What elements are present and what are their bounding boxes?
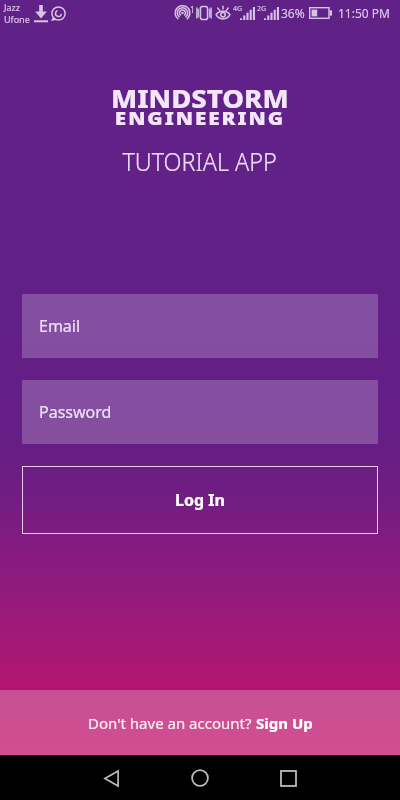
staticText: MINDSTORM xyxy=(111,81,289,115)
button[interactable]: Email xyxy=(22,294,378,358)
staticText: 4G xyxy=(233,4,243,14)
staticText: 36% xyxy=(281,5,305,21)
staticText: ENGINEERING xyxy=(115,106,286,131)
button[interactable]: Don't have an account? xyxy=(88,713,313,733)
button[interactable]: Password xyxy=(22,380,378,444)
staticText: Don't have an account? xyxy=(88,713,256,733)
button[interactable]: Back xyxy=(93,760,129,796)
staticText: 11:50 PM xyxy=(338,5,390,21)
staticText: Jazz xyxy=(4,1,20,13)
button[interactable]: Log In xyxy=(22,466,378,534)
staticText: Password xyxy=(39,401,112,423)
staticText: Email xyxy=(39,315,81,337)
staticText: Ufone xyxy=(4,13,30,25)
staticText: 1 xyxy=(190,4,195,15)
staticText: 2G xyxy=(257,4,267,14)
staticText: Sign Up xyxy=(256,713,313,733)
staticText: Log In xyxy=(175,489,225,511)
button[interactable]: Recent apps xyxy=(270,760,306,796)
button[interactable]: Home xyxy=(182,760,218,796)
staticText: TUTORIAL APP xyxy=(122,144,278,178)
